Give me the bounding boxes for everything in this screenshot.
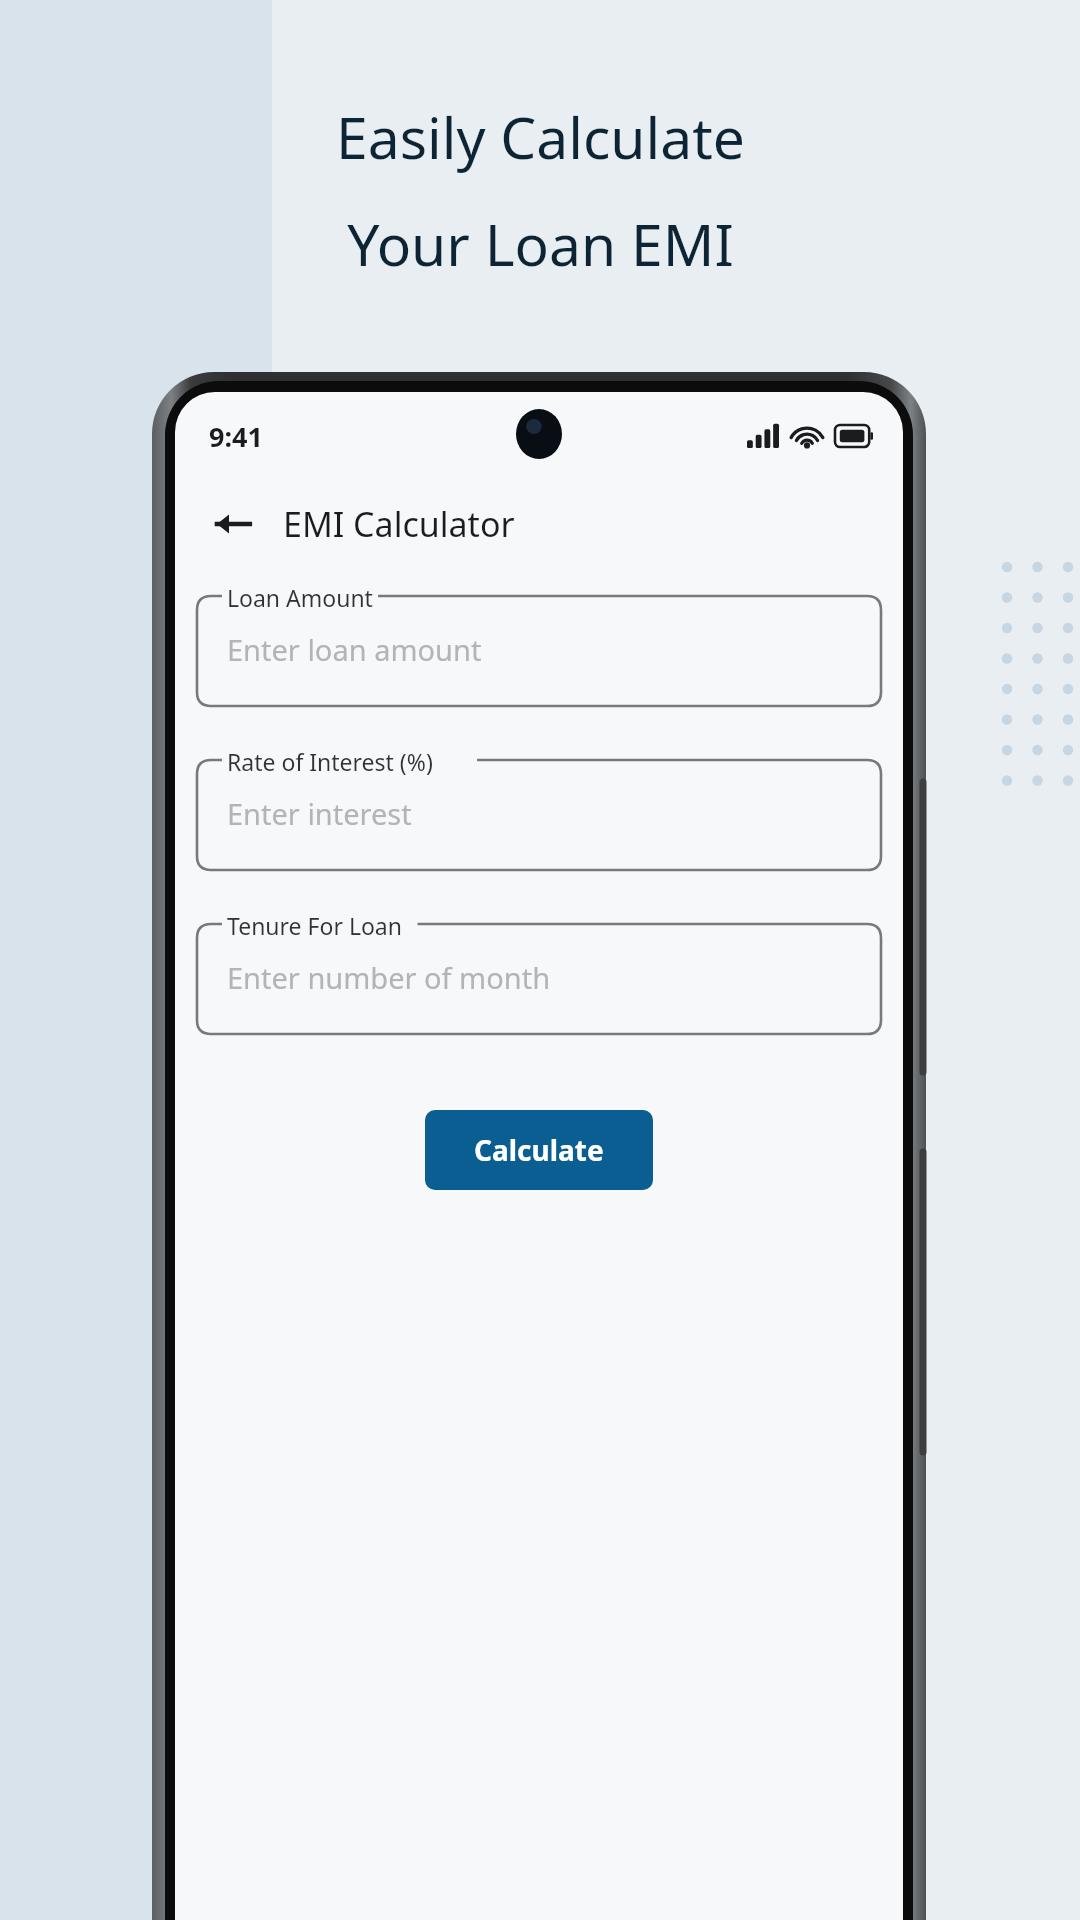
- staticText: Your Loan EMI: [347, 205, 734, 283]
- button[interactable]: Back: [205, 496, 261, 552]
- staticText: Enter number of month: [227, 958, 551, 997]
- staticText: Tenure For Loan: [227, 910, 402, 941]
- staticText: EMI Calculator: [283, 501, 515, 547]
- staticText: Enter interest: [227, 794, 412, 833]
- button[interactable]: Loan Amount: [197, 582, 881, 706]
- button[interactable]: Tenure For Loan: [197, 910, 881, 1034]
- staticText: 9:41: [209, 418, 263, 455]
- staticText: Calculate: [474, 1131, 604, 1169]
- button[interactable]: Rate of Interest (%): [197, 746, 881, 870]
- staticText: Rate of Interest (%): [227, 746, 433, 777]
- staticText: Easily Calculate: [336, 98, 745, 176]
- staticText: Loan Amount: [227, 582, 373, 613]
- button[interactable]: Calculate: [425, 1110, 653, 1190]
- staticText: Enter loan amount: [227, 630, 482, 669]
